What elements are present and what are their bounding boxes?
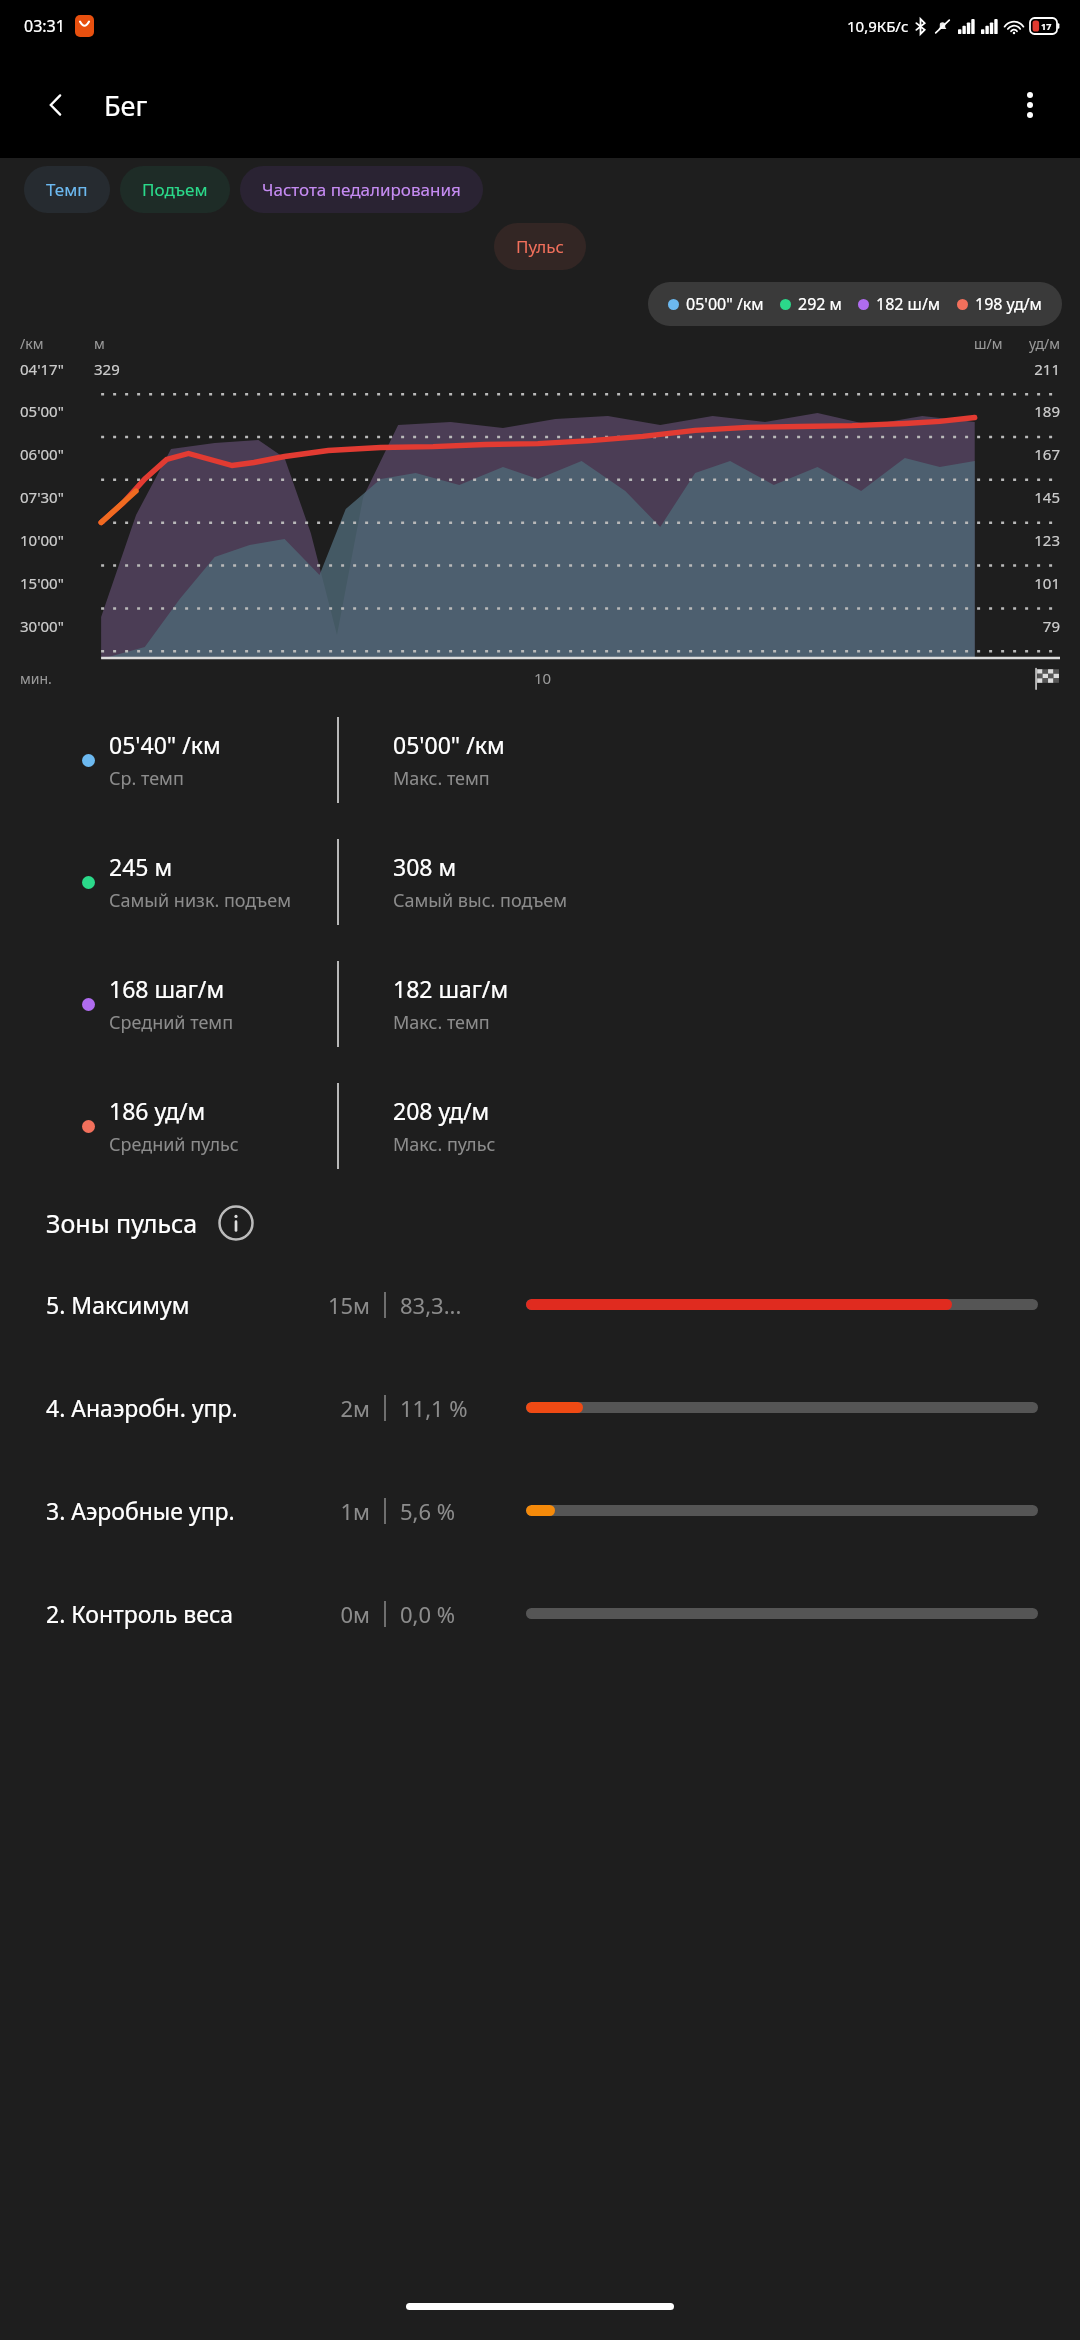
- staticText: Частота педалирования: [262, 178, 461, 201]
- staticText: 292 м: [798, 293, 842, 315]
- staticText: 11,1 %: [400, 1393, 518, 1423]
- staticText: 245 м: [109, 851, 173, 882]
- staticText: 30'00": [20, 616, 94, 636]
- staticText: 15м: [318, 1290, 370, 1320]
- staticText: 101: [1018, 573, 1060, 593]
- staticText: Самый низк. подъем: [109, 888, 291, 913]
- button[interactable]: 245 м: [0, 821, 1080, 943]
- staticText: 06'00": [20, 444, 94, 464]
- staticText: 168 шаг/м: [109, 973, 225, 1004]
- staticText: 04'17": [20, 359, 94, 379]
- staticText: уд/м: [1029, 334, 1060, 353]
- staticText: 5. Максимум: [46, 1289, 318, 1320]
- staticText: 4. Анаэробн. упр.: [46, 1392, 318, 1423]
- staticText: 1м: [318, 1496, 370, 1526]
- staticText: 189: [1018, 401, 1060, 421]
- staticText: Темп: [46, 178, 88, 201]
- staticText: 05'00" /км: [393, 729, 505, 760]
- staticText: Подъем: [142, 178, 208, 201]
- staticText: Пульс: [516, 235, 564, 258]
- staticText: 123: [1018, 530, 1060, 550]
- button[interactable]: Назад: [28, 77, 84, 133]
- staticText: 186 уд/м: [109, 1095, 206, 1126]
- staticText: мин.: [20, 669, 52, 688]
- staticText: Макс. пульс: [393, 1132, 496, 1157]
- button[interactable]: Ещё: [1002, 77, 1058, 133]
- staticText: 3. Аэробные упр.: [46, 1495, 318, 1526]
- staticText: 2м: [318, 1393, 370, 1423]
- button[interactable]: 05'00" /км: [648, 282, 1062, 326]
- staticText: Средний пульс: [109, 1132, 239, 1157]
- staticText: ш/м: [974, 334, 1003, 353]
- staticText: Зоны пульса: [46, 1206, 198, 1240]
- staticText: 10: [534, 668, 552, 688]
- staticText: 83,3...: [400, 1290, 518, 1320]
- staticText: 167: [1018, 444, 1060, 464]
- staticText: 05'40" /км: [109, 729, 221, 760]
- staticText: 03:31: [24, 15, 65, 37]
- staticText: 05'00" /км: [686, 293, 764, 315]
- staticText: Ср. темп: [109, 766, 184, 791]
- button[interactable]: 2. Контроль веса: [0, 1562, 1080, 1665]
- staticText: 182 ш/м: [876, 293, 941, 315]
- staticText: 10,9КБ/с: [847, 16, 909, 36]
- staticText: 329: [94, 359, 120, 379]
- button[interactable]: Частота педалирования: [240, 166, 483, 213]
- staticText: 208 уд/м: [393, 1095, 490, 1126]
- staticText: Макс. темп: [393, 1010, 490, 1035]
- button[interactable]: 168 шаг/м: [0, 943, 1080, 1065]
- staticText: 2. Контроль веса: [46, 1598, 318, 1629]
- staticText: 198 уд/м: [975, 293, 1042, 315]
- button[interactable]: 4. Анаэробн. упр.: [0, 1356, 1080, 1459]
- button[interactable]: Темп: [24, 166, 110, 213]
- staticText: 17: [1041, 20, 1052, 32]
- staticText: 79: [1018, 616, 1060, 636]
- button[interactable]: 05'40" /км: [0, 699, 1080, 821]
- staticText: 07'30": [20, 487, 94, 507]
- staticText: м: [94, 334, 105, 353]
- button[interactable]: Пульс: [494, 223, 586, 270]
- staticText: 182 шаг/м: [393, 973, 509, 1004]
- staticText: Бег: [104, 87, 148, 124]
- button[interactable]: 5. Максимум: [0, 1253, 1080, 1356]
- staticText: 145: [1018, 487, 1060, 507]
- staticText: 15'00": [20, 573, 94, 593]
- button[interactable]: Подъем: [120, 166, 230, 213]
- staticText: 0м: [318, 1599, 370, 1629]
- staticText: 211: [1018, 359, 1060, 379]
- button[interactable]: Информация: [216, 1203, 256, 1243]
- staticText: 05'00": [20, 401, 94, 421]
- button[interactable]: 3. Аэробные упр.: [0, 1459, 1080, 1562]
- staticText: /км: [20, 334, 94, 353]
- staticText: Средний темп: [109, 1010, 234, 1035]
- staticText: Самый выс. подъем: [393, 888, 568, 913]
- staticText: 308 м: [393, 851, 457, 882]
- button[interactable]: 186 уд/м: [0, 1065, 1080, 1187]
- staticText: 10'00": [20, 530, 94, 550]
- staticText: 5,6 %: [400, 1496, 518, 1526]
- staticText: Макс. темп: [393, 766, 490, 791]
- staticText: 0,0 %: [400, 1599, 518, 1629]
